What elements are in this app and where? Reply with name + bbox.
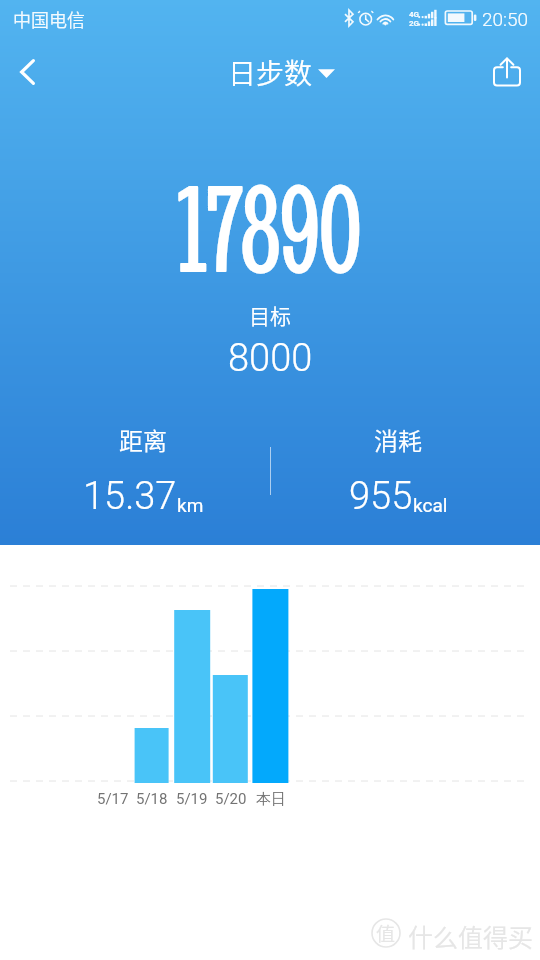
staticText: 5/20 <box>215 790 247 808</box>
staticText: 5/17 <box>97 790 129 808</box>
staticText: 值 <box>376 919 396 947</box>
staticText: 距离 <box>119 422 167 457</box>
button[interactable]: 日步数 <box>222 52 341 93</box>
staticText: 5/19 <box>176 790 208 808</box>
staticText: 4G <box>409 10 420 19</box>
button[interactable]: Back <box>0 44 55 100</box>
button[interactable]: Share <box>479 44 535 100</box>
staticText: 8000 <box>228 336 313 381</box>
staticText: km <box>177 494 204 516</box>
staticText: 日步数 <box>228 52 313 93</box>
staticText: 中国电信 <box>13 6 85 32</box>
button[interactable]: 5/17 <box>93 560 132 810</box>
staticText: 消耗 <box>374 422 422 457</box>
staticText: 本日 <box>256 790 286 809</box>
staticText: 955 <box>349 474 413 519</box>
button[interactable]: 5/18 <box>132 560 171 810</box>
staticText: 什么值得买 <box>408 918 534 954</box>
staticText: 20:50 <box>482 8 529 30</box>
staticText: kcal <box>413 494 448 516</box>
staticText: 目标 <box>249 300 291 330</box>
button[interactable]: 5/19 <box>172 560 211 810</box>
staticText: 2G <box>409 19 420 28</box>
button[interactable]: 本日 <box>251 560 290 810</box>
staticText: 15.37 <box>83 474 177 519</box>
button[interactable]: 5/20 <box>211 560 250 810</box>
staticText: 5/18 <box>136 790 168 808</box>
